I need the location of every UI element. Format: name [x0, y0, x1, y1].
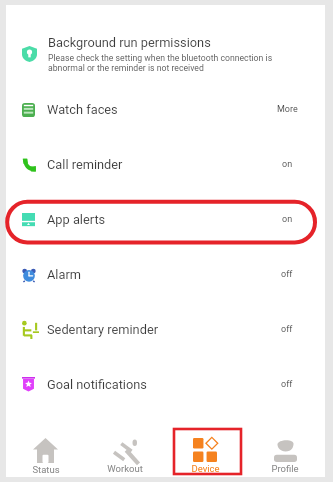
- staticText: Status: [32, 464, 60, 475]
- button[interactable]: Status: [6, 412, 85, 477]
- staticText: Please check the setting when the blueto…: [48, 53, 283, 73]
- staticText: Device: [191, 463, 220, 474]
- staticText: off: [281, 324, 293, 335]
- button[interactable]: Call reminder: [6, 137, 325, 192]
- staticText: off: [281, 269, 293, 280]
- staticText: on: [282, 159, 293, 170]
- button[interactable]: Device: [165, 412, 245, 477]
- staticText: Sedentary reminder: [47, 322, 267, 337]
- staticText: More: [277, 104, 298, 115]
- staticText: Goal notifications: [47, 377, 267, 392]
- staticText: off: [281, 379, 293, 390]
- button[interactable]: App alerts: [6, 192, 325, 247]
- staticText: Alarm: [47, 267, 267, 282]
- staticText: App alerts: [47, 212, 267, 227]
- staticText: Workout: [107, 463, 143, 474]
- button[interactable]: Alarm: [6, 247, 325, 302]
- button[interactable]: Workout: [85, 412, 165, 477]
- button[interactable]: Background run permissions: [6, 5, 325, 82]
- staticText: Watch faces: [47, 102, 267, 117]
- button[interactable]: Goal notifications: [6, 357, 325, 412]
- staticText: Background run permissions: [48, 35, 211, 50]
- staticText: on: [282, 214, 293, 225]
- button[interactable]: Profile: [245, 412, 325, 477]
- button[interactable]: Sedentary reminder: [6, 302, 325, 357]
- staticText: Call reminder: [47, 157, 267, 172]
- staticText: Profile: [271, 463, 299, 474]
- button[interactable]: Watch faces: [6, 82, 325, 137]
